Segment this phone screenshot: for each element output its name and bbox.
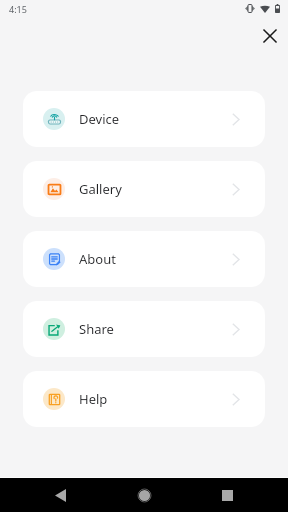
button[interactable]: Recents [210,478,244,512]
button[interactable]: Help [23,371,265,427]
staticText: Share [79,320,114,338]
button[interactable]: Gallery [23,161,265,217]
staticText: Gallery [79,180,122,198]
staticText: About [79,250,116,268]
button[interactable]: Share [23,301,265,357]
button[interactable]: Device [23,91,265,147]
staticText: 4:15 [9,3,27,15]
button[interactable]: Back [43,478,77,512]
staticText: Device [79,110,120,128]
button[interactable]: Home [127,478,161,512]
staticText: Help [79,390,108,408]
button[interactable]: About [23,231,265,287]
button[interactable]: Close [252,18,288,54]
